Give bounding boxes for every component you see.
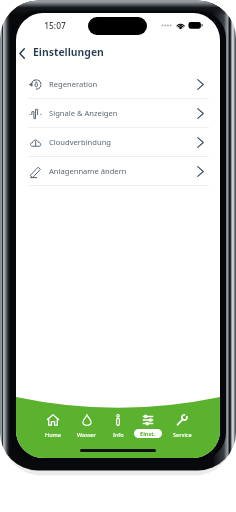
staticText: Info: [113, 431, 124, 439]
button[interactable]: Anlagenname ändern: [16, 157, 220, 185]
staticText: Wasser: [77, 431, 97, 439]
staticText: Anlagenname ändern: [49, 166, 127, 176]
staticText: Cloudverbindung: [49, 137, 112, 147]
button[interactable]: Einst.: [126, 414, 170, 438]
staticText: Service: [173, 431, 192, 439]
button[interactable]: Info: [96, 414, 140, 437]
staticText: Home: [45, 431, 61, 439]
button[interactable]: Home: [31, 414, 75, 437]
button[interactable]: Wasser: [65, 414, 109, 437]
staticText: Regeneration: [49, 79, 98, 89]
button[interactable]: Regeneration: [16, 70, 220, 98]
staticText: Einst.: [140, 430, 156, 438]
staticText: Einstellungen: [33, 45, 104, 59]
button[interactable]: Back: [16, 41, 32, 66]
button[interactable]: Signale & Anzeigen: [16, 99, 220, 127]
staticText: 15:07: [44, 20, 66, 31]
button[interactable]: Cloudverbindung: [16, 128, 220, 156]
button[interactable]: Service: [160, 414, 204, 437]
staticText: Signale & Anzeigen: [49, 108, 118, 118]
